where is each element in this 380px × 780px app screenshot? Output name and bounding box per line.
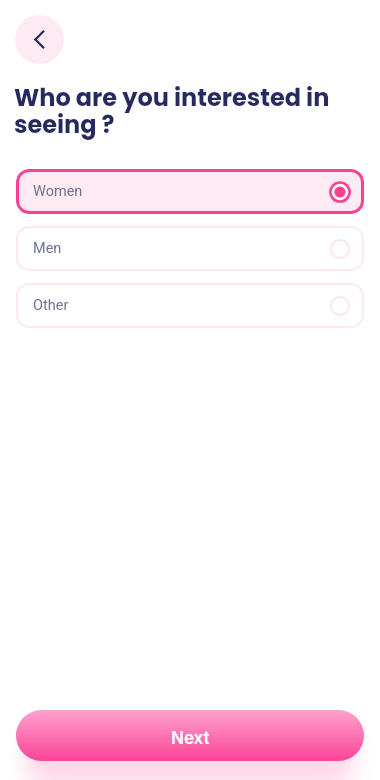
- button[interactable]: Next: [16, 710, 364, 761]
- staticText: Who are you interested in seeing ?: [14, 81, 372, 141]
- staticText: Women: [33, 183, 83, 200]
- staticText: Next: [171, 728, 210, 749]
- staticText: Men: [33, 240, 62, 257]
- button[interactable]: Back: [15, 15, 64, 64]
- button[interactable]: Women: [16, 169, 364, 214]
- button[interactable]: Men: [16, 226, 364, 271]
- staticText: Other: [33, 297, 69, 314]
- button[interactable]: Other: [16, 283, 364, 328]
